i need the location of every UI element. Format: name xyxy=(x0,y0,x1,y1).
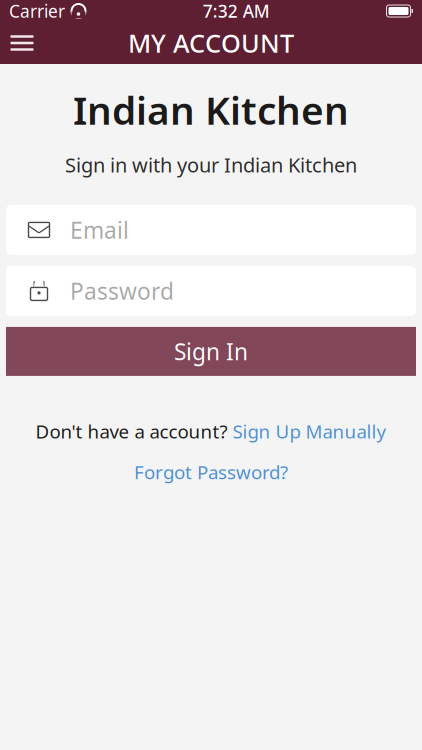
staticText: Email xyxy=(70,215,129,245)
staticText: Carrier xyxy=(9,0,65,22)
staticText: Forgot Password? xyxy=(134,460,288,484)
staticText: Sign In xyxy=(174,336,248,366)
button[interactable]: Menu xyxy=(0,22,44,64)
staticText: MY ACCOUNT xyxy=(128,26,294,60)
staticText: Sign in with your Indian Kitchen xyxy=(65,151,357,178)
button[interactable]: Sign Up Manually xyxy=(232,419,386,444)
button[interactable]: Forgot Password? xyxy=(134,460,288,484)
staticText: Don't have a account? xyxy=(35,419,227,444)
staticText: Indian Kitchen xyxy=(73,84,349,135)
staticText: 7:32 AM xyxy=(203,0,270,22)
staticText: Password xyxy=(70,276,174,306)
button[interactable]: Sign In xyxy=(6,327,416,376)
staticText: Sign Up Manually xyxy=(232,419,386,444)
